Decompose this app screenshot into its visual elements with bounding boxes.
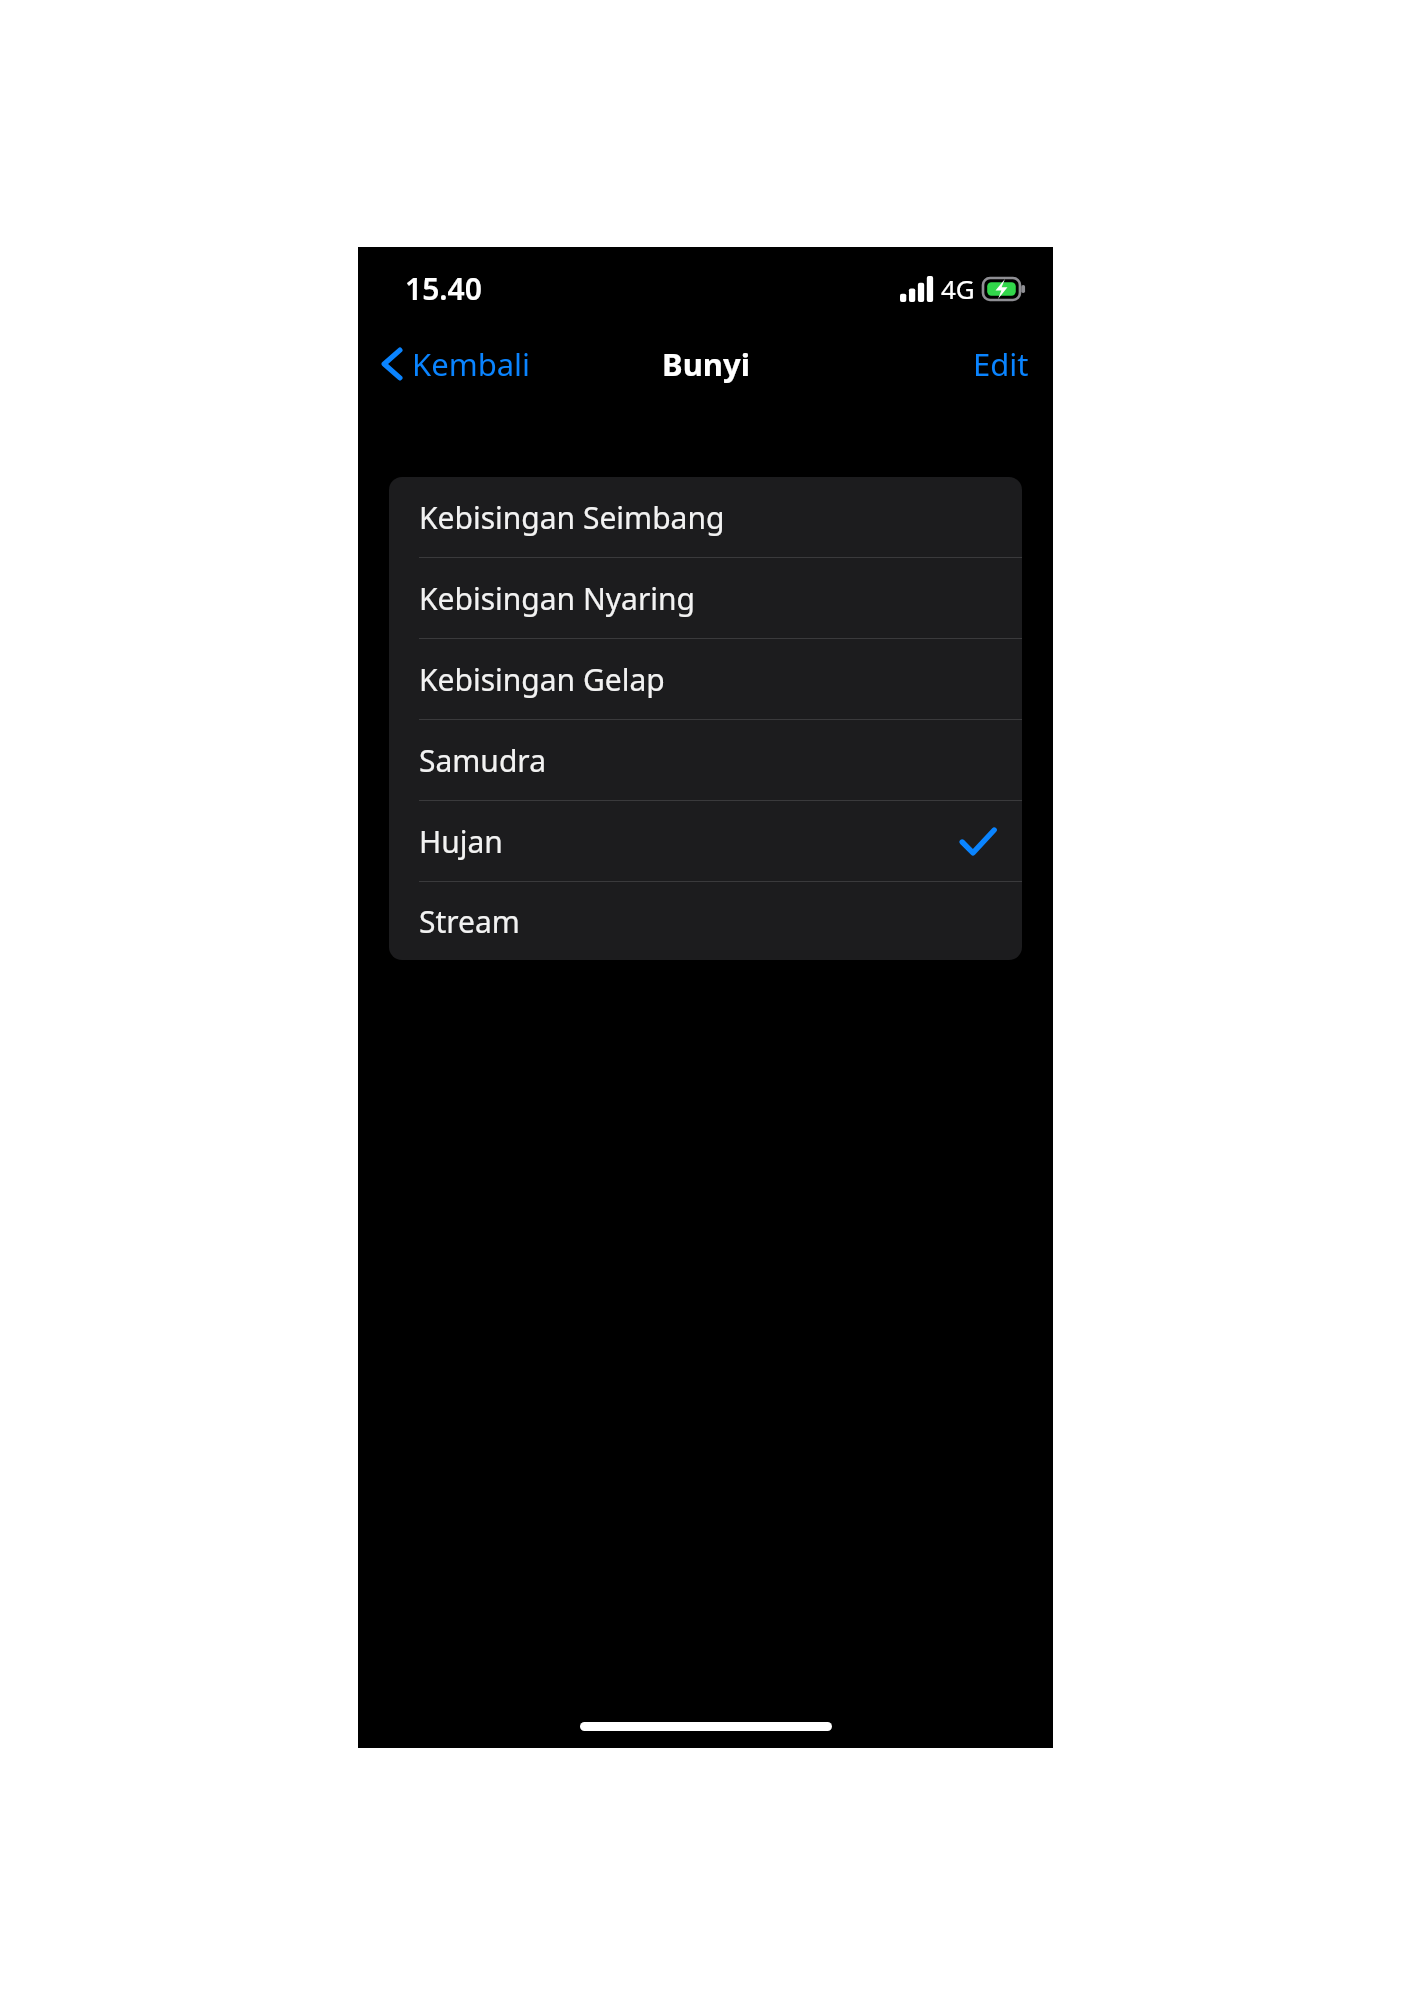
- staticText: Kebisingan Seimbang: [419, 497, 725, 538]
- staticText: 4G: [941, 271, 975, 306]
- staticText: Bunyi: [662, 343, 750, 385]
- staticText: Kebisingan Nyaring: [419, 578, 695, 619]
- staticText: Edit: [973, 343, 1029, 385]
- button[interactable]: Edit: [949, 335, 1053, 393]
- button[interactable]: Hujan: [389, 801, 1022, 882]
- staticText: Kembali: [412, 343, 531, 385]
- button[interactable]: Kebisingan Nyaring: [389, 558, 1022, 639]
- button[interactable]: Kembali: [358, 337, 545, 391]
- button[interactable]: Samudra: [389, 720, 1022, 801]
- staticText: Samudra: [419, 740, 546, 781]
- button[interactable]: Stream: [389, 882, 1022, 960]
- staticText: Stream: [419, 901, 520, 942]
- staticText: 15.40: [405, 268, 482, 309]
- staticText: Hujan: [419, 821, 503, 862]
- staticText: Kebisingan Gelap: [419, 659, 665, 700]
- button[interactable]: Kebisingan Seimbang: [389, 477, 1022, 558]
- button[interactable]: Kebisingan Gelap: [389, 639, 1022, 720]
